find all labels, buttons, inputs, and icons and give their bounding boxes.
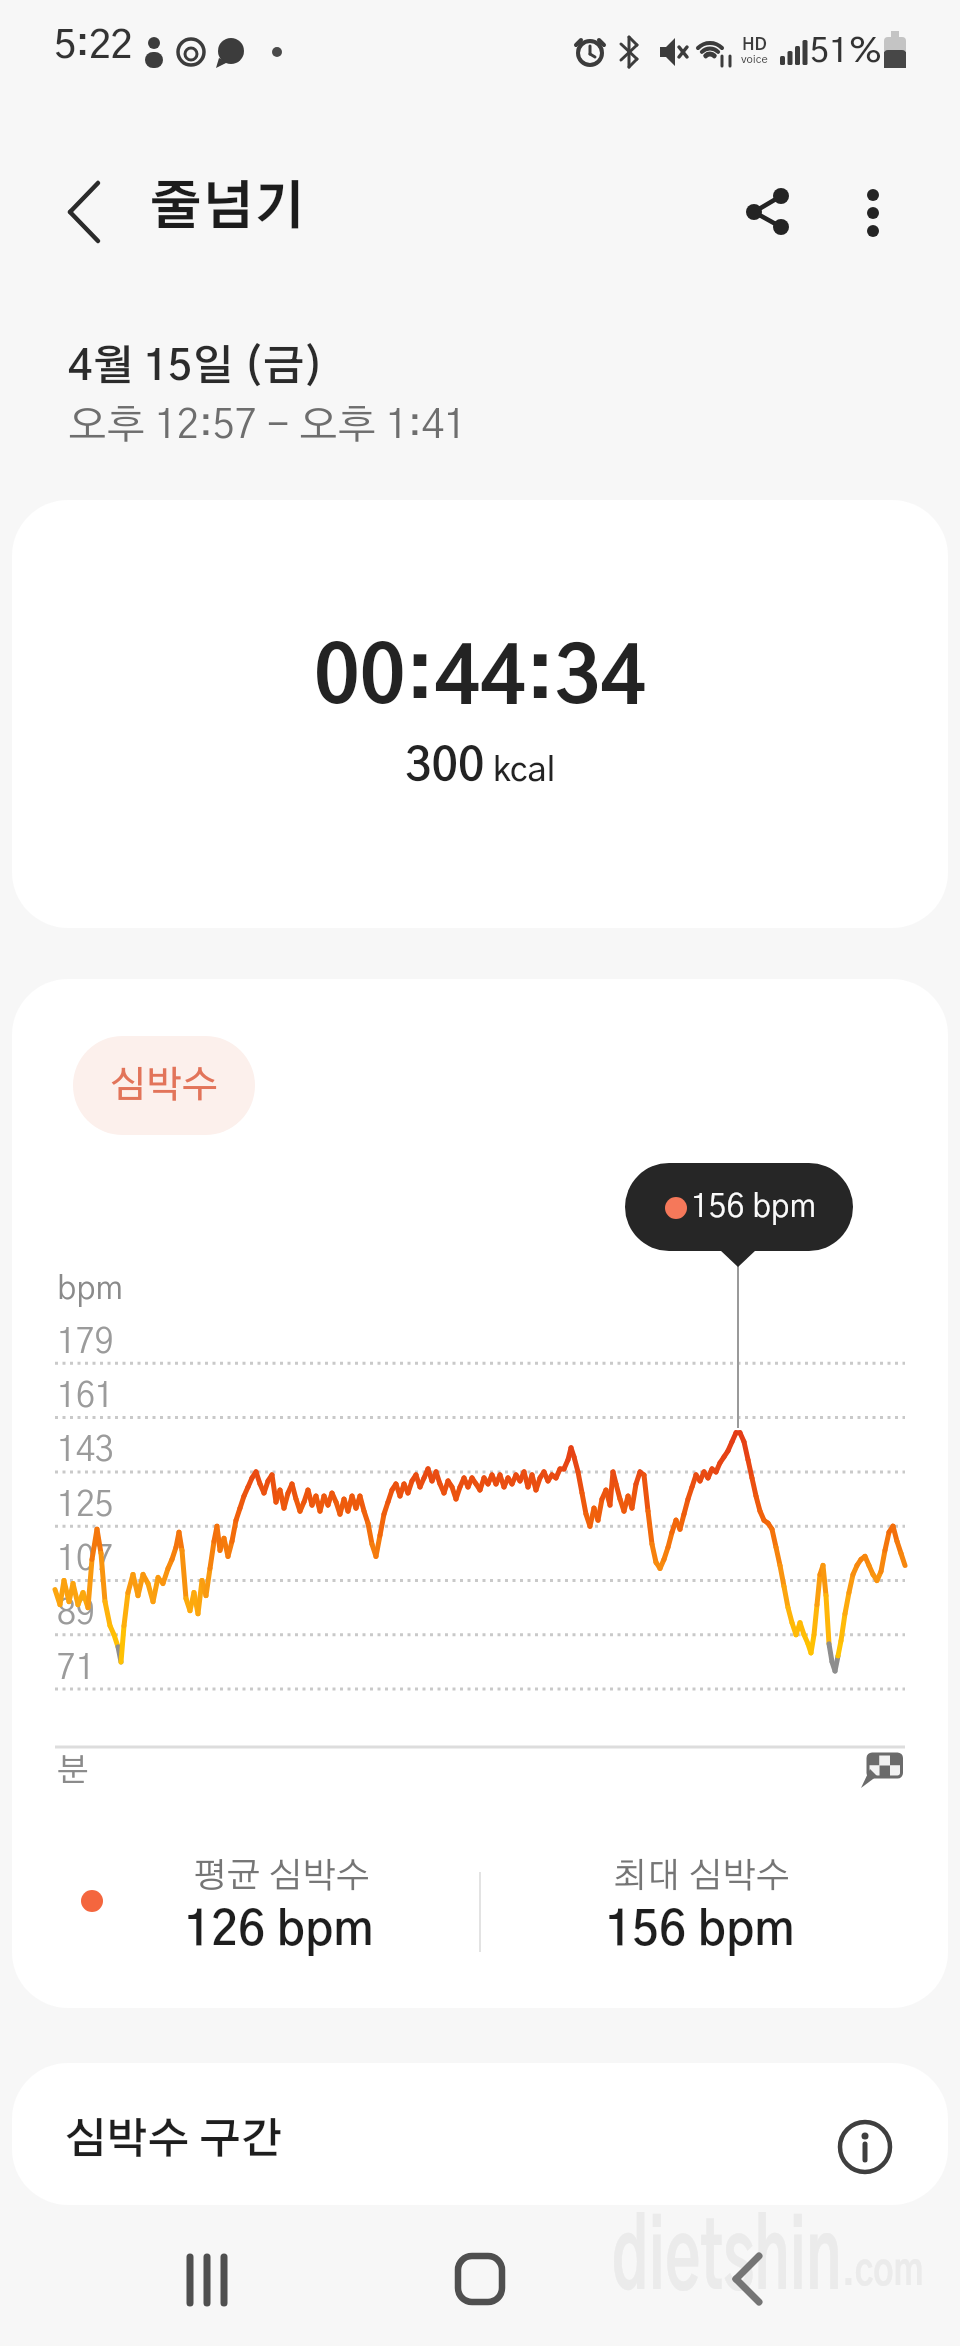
staticText: 분	[57, 1755, 89, 1788]
button[interactable]	[730, 180, 796, 246]
button[interactable]	[845, 180, 901, 246]
staticText: 심박수	[110, 1067, 218, 1104]
staticText: 심박수 구간	[65, 2119, 282, 2161]
staticText: 161	[57, 1380, 114, 1414]
staticText: 00:44:34	[314, 641, 646, 719]
staticText: 51%	[810, 35, 883, 69]
staticText: 71	[57, 1652, 95, 1686]
button[interactable]	[12, 979, 948, 2008]
staticText: 오후 12:57 - 오후 1:41	[68, 406, 467, 446]
button[interactable]	[432, 2240, 528, 2336]
staticText: dietshin	[612, 2212, 841, 2308]
staticText: 125	[57, 1489, 114, 1523]
staticText: 143	[57, 1434, 114, 1468]
button[interactable]: 심박수	[73, 1036, 255, 1135]
button[interactable]	[160, 2240, 256, 2336]
staticText: HD	[742, 36, 767, 53]
button[interactable]: 00:44:34	[12, 500, 948, 928]
staticText: 줄넘기	[150, 183, 306, 235]
staticText: bpm	[57, 1273, 123, 1306]
staticText: 156 bpm	[691, 1191, 816, 1223]
staticText: voice	[741, 54, 768, 65]
staticText: 최대 심박수	[613, 1859, 790, 1894]
staticText: 126 bpm	[184, 1908, 374, 1955]
staticText: 179	[57, 1326, 114, 1360]
staticText: 4월 15일 (금)	[68, 346, 324, 388]
button[interactable]	[700, 2240, 796, 2336]
staticText: 평균 심박수	[193, 1859, 370, 1894]
staticText: 107	[57, 1543, 114, 1577]
staticText: 300 kcal	[405, 744, 556, 790]
staticText: 156 bpm	[605, 1908, 795, 1955]
staticText: .com	[842, 2250, 924, 2294]
staticText: 5:22	[54, 26, 132, 66]
button[interactable]: 심박수 구간	[12, 2063, 948, 2205]
button[interactable]	[56, 182, 116, 242]
staticText: 89	[57, 1597, 95, 1631]
